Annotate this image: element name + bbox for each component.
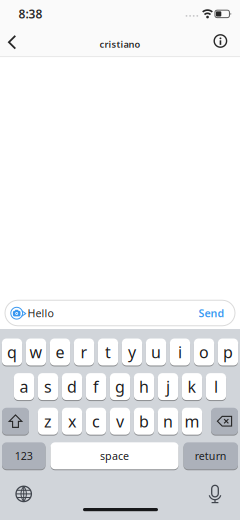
button[interactable]: v bbox=[110, 407, 130, 435]
button[interactable]: y bbox=[122, 338, 142, 366]
button[interactable]: i bbox=[170, 338, 190, 366]
staticText: l bbox=[214, 376, 218, 397]
button[interactable] bbox=[210, 31, 230, 51]
button[interactable]: return bbox=[183, 442, 238, 470]
button[interactable]: h bbox=[134, 373, 154, 401]
staticText: return bbox=[195, 449, 227, 463]
staticText: h bbox=[139, 376, 149, 397]
button[interactable] bbox=[211, 407, 238, 435]
button[interactable] bbox=[15, 485, 33, 503]
button[interactable]: c bbox=[86, 407, 106, 435]
staticText: 123 bbox=[15, 449, 33, 463]
staticText: j bbox=[166, 376, 170, 397]
button[interactable]: d bbox=[62, 373, 82, 401]
button[interactable]: t bbox=[98, 338, 118, 366]
staticText: z bbox=[44, 411, 52, 432]
button[interactable]: 123 bbox=[2, 442, 45, 470]
button[interactable]: f bbox=[86, 373, 106, 401]
button[interactable]: s bbox=[38, 373, 58, 401]
staticText: cristiano bbox=[99, 38, 140, 50]
button[interactable] bbox=[5, 300, 235, 326]
staticText: m bbox=[184, 411, 199, 432]
staticText: Send bbox=[198, 306, 224, 320]
button[interactable] bbox=[206, 484, 224, 504]
button[interactable] bbox=[9, 305, 25, 321]
staticText: a bbox=[19, 376, 28, 397]
button[interactable]: k bbox=[182, 373, 202, 401]
staticText: k bbox=[187, 376, 196, 397]
button[interactable]: x bbox=[62, 407, 82, 435]
staticText: Hello bbox=[27, 306, 53, 320]
staticText: r bbox=[80, 341, 87, 363]
staticText: q bbox=[7, 341, 17, 363]
button[interactable]: w bbox=[26, 338, 46, 366]
staticText: p bbox=[223, 341, 233, 363]
staticText: g bbox=[115, 376, 125, 397]
button[interactable]: e bbox=[50, 338, 70, 366]
button[interactable]: o bbox=[194, 338, 214, 366]
button[interactable]: m bbox=[182, 407, 202, 435]
staticText: e bbox=[55, 341, 64, 363]
staticText: d bbox=[67, 376, 77, 397]
staticText: space bbox=[100, 449, 129, 463]
staticText: n bbox=[163, 411, 173, 432]
button[interactable] bbox=[2, 407, 29, 435]
button[interactable]: r bbox=[74, 338, 94, 366]
staticText: y bbox=[128, 341, 136, 363]
button[interactable]: q bbox=[2, 338, 22, 366]
staticText: s bbox=[44, 376, 52, 397]
staticText: x bbox=[68, 411, 76, 432]
button[interactable]: j bbox=[158, 373, 178, 401]
button[interactable]: a bbox=[14, 373, 34, 401]
staticText: u bbox=[151, 341, 161, 363]
staticText: b bbox=[139, 411, 149, 432]
button[interactable]: g bbox=[110, 373, 130, 401]
button[interactable]: n bbox=[158, 407, 178, 435]
staticText: f bbox=[93, 376, 99, 397]
staticText: v bbox=[116, 411, 124, 432]
staticText: i bbox=[178, 341, 182, 363]
staticText: t bbox=[105, 341, 111, 363]
button[interactable]: z bbox=[38, 407, 58, 435]
button[interactable]: Send bbox=[198, 306, 224, 320]
staticText: o bbox=[199, 341, 209, 363]
button[interactable] bbox=[7, 35, 17, 50]
button[interactable]: space bbox=[50, 442, 178, 470]
button[interactable]: u bbox=[146, 338, 166, 366]
staticText: w bbox=[29, 341, 42, 363]
button[interactable]: l bbox=[206, 373, 226, 401]
button[interactable]: p bbox=[218, 338, 238, 366]
staticText: 8:38 bbox=[18, 6, 42, 22]
staticText: c bbox=[92, 411, 100, 432]
button[interactable]: b bbox=[134, 407, 154, 435]
